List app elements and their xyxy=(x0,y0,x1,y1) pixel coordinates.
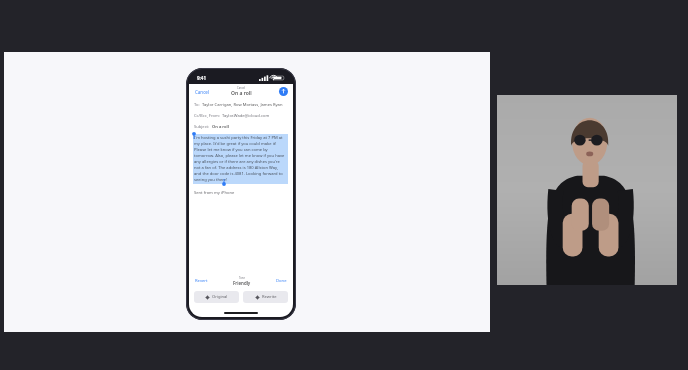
button[interactable]: Cancel xyxy=(193,87,212,97)
staticText: Revert xyxy=(195,278,208,284)
staticText: not a fan of. The address is 180 Allston… xyxy=(194,165,279,171)
staticText: Done xyxy=(276,278,287,284)
button[interactable]: Rewrite xyxy=(243,291,288,303)
staticText: and the door code is 4081. Looking forwa… xyxy=(194,171,283,177)
staticText: seeing you there! xyxy=(194,177,228,183)
staticText: On a roll xyxy=(212,124,229,130)
staticText: Taylor.Wade@icloud.com xyxy=(222,113,270,119)
staticText: I'm hosting a sushi party this Friday at… xyxy=(194,135,283,141)
staticText: On a roll xyxy=(231,90,252,97)
staticText: Rewrite xyxy=(262,294,277,300)
button[interactable]: Cc/Bcc, From: xyxy=(189,110,293,121)
staticText: any allergies or if there are any dishes… xyxy=(194,159,280,165)
button[interactable]: Done xyxy=(275,277,288,285)
button[interactable]: To: xyxy=(189,99,293,110)
staticText: Sent from my iPhone xyxy=(194,190,235,196)
staticText: Taylor Carrigan, Row Mortass, James Ryan xyxy=(202,102,283,108)
staticText: Cancel xyxy=(237,86,246,90)
staticText: Friendly xyxy=(233,280,251,286)
staticText: To: xyxy=(194,102,200,108)
staticText: Cc/Bcc, From: xyxy=(194,113,220,119)
staticText: Tone xyxy=(239,276,245,280)
staticText: tomorrow. Also, please let me know if yo… xyxy=(194,153,285,159)
staticText: 9:41 xyxy=(197,75,206,81)
staticText: Subject: xyxy=(194,124,210,130)
staticText: Please let me know if you can come by xyxy=(194,147,268,153)
staticText: my place. It'd be great if you could mak… xyxy=(194,141,277,147)
button[interactable]: Send xyxy=(278,86,289,97)
button[interactable]: Original xyxy=(194,291,239,303)
button[interactable]: Subject: xyxy=(189,121,293,132)
button[interactable]: Revert xyxy=(194,277,209,285)
staticText: Cancel xyxy=(195,89,210,95)
staticText: Original xyxy=(212,294,228,300)
